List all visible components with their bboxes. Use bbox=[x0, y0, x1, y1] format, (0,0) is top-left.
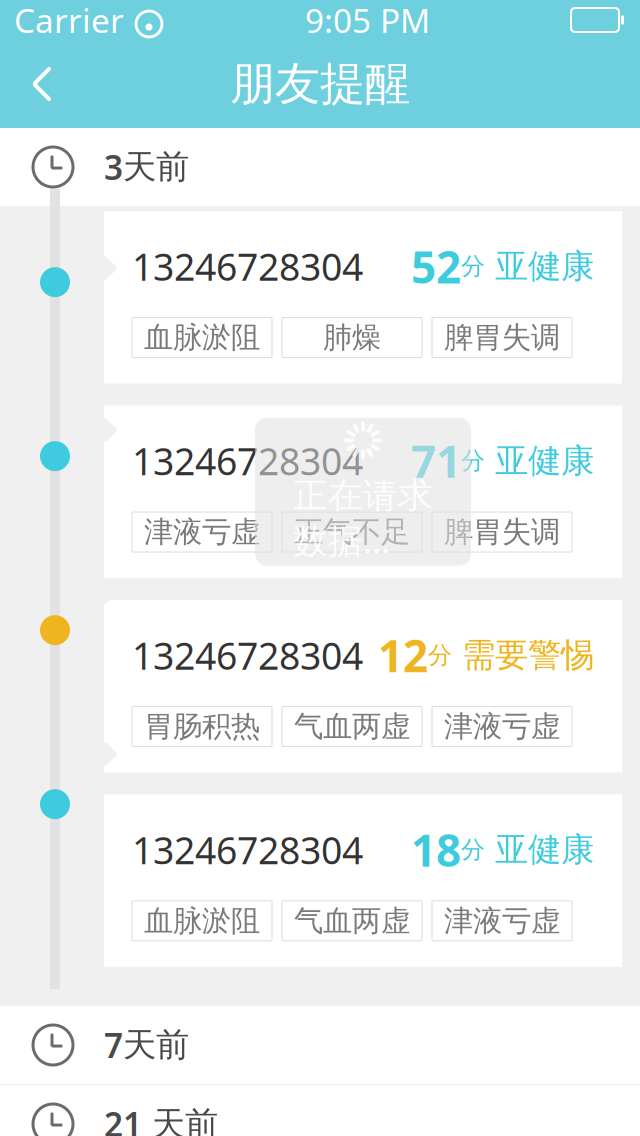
staticText: 天前 bbox=[142, 1103, 218, 1136]
staticText: 胃肠积热 bbox=[144, 708, 260, 744]
button[interactable]: 21 bbox=[0, 1085, 640, 1136]
staticText: 津液亏虚 bbox=[144, 514, 260, 550]
button[interactable]: Back bbox=[10, 52, 74, 116]
staticText: 亚健康 bbox=[495, 440, 594, 481]
staticText: 18 bbox=[411, 820, 461, 879]
staticText: 肺燥 bbox=[323, 320, 381, 356]
button[interactable]: 13246728304 bbox=[104, 600, 622, 772]
staticText: 分 bbox=[461, 446, 485, 475]
staticText: 3 bbox=[104, 145, 123, 189]
staticText: 13246728304 bbox=[132, 242, 363, 291]
staticText: 气血两虚 bbox=[294, 903, 410, 939]
staticText: 正在请求数据... bbox=[293, 474, 433, 563]
staticText: 12 bbox=[378, 626, 428, 684]
staticText: 13246728304 bbox=[132, 436, 363, 486]
staticText: 天前 bbox=[123, 146, 189, 187]
staticText: 津液亏虚 bbox=[444, 903, 560, 939]
staticText: 分 bbox=[461, 835, 485, 864]
staticText: 正气不足 bbox=[294, 514, 410, 550]
staticText: 血脉淤阻 bbox=[144, 903, 260, 939]
staticText: 血脉淤阻 bbox=[144, 320, 260, 356]
staticText: 分 bbox=[461, 252, 485, 281]
staticText: 天前 bbox=[123, 1024, 189, 1065]
button[interactable]: 3 bbox=[0, 128, 640, 206]
button[interactable]: 13246728304 bbox=[104, 211, 622, 383]
staticText: 脾胃失调 bbox=[444, 320, 560, 356]
staticText: 亚健康 bbox=[495, 246, 594, 287]
button[interactable]: 13246728304 bbox=[104, 794, 622, 967]
staticText: 脾胃失调 bbox=[444, 514, 560, 550]
staticText: 需要警惕 bbox=[462, 635, 594, 676]
staticText: 52 bbox=[411, 237, 461, 295]
staticText: 亚健康 bbox=[495, 829, 594, 870]
button[interactable]: 13246728304 bbox=[104, 406, 622, 578]
staticText: 13246728304 bbox=[132, 630, 363, 680]
staticText: 气血两虚 bbox=[294, 708, 410, 744]
staticText: 朋友提醒 bbox=[230, 56, 410, 112]
staticText: 津液亏虚 bbox=[444, 708, 560, 744]
staticText: 分 bbox=[428, 640, 452, 670]
staticText: 21 bbox=[104, 1102, 142, 1136]
staticText: 71 bbox=[411, 432, 461, 490]
staticText: Carrier bbox=[14, 0, 124, 42]
button[interactable]: 7 bbox=[0, 1006, 640, 1084]
staticText: 7 bbox=[104, 1023, 123, 1067]
staticText: 9:05 PM bbox=[305, 0, 430, 42]
staticText: 13246728304 bbox=[132, 825, 363, 874]
